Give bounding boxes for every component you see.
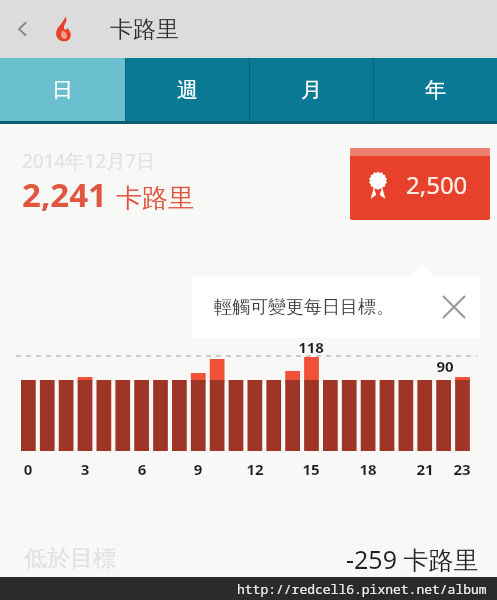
staticText: 2,241	[22, 172, 107, 217]
button[interactable]: 2,500	[350, 148, 490, 220]
button[interactable]: 週	[125, 58, 249, 121]
staticText: 2,500	[406, 168, 468, 201]
staticText: 卡路里	[110, 15, 179, 44]
staticText: 12	[243, 459, 267, 479]
staticText: 118	[295, 337, 327, 357]
staticText: -259 卡路里	[346, 542, 479, 576]
staticText: 日	[52, 77, 73, 103]
staticText: 週	[177, 77, 198, 103]
staticText: 輕觸可變更每日目標。	[214, 296, 394, 319]
staticText: 15	[299, 459, 323, 479]
button[interactable]: Back	[0, 0, 46, 58]
staticText: 卡路里	[116, 182, 194, 215]
staticText: 3	[73, 459, 97, 479]
staticText: 低於目標	[24, 544, 116, 573]
staticText: 0	[16, 459, 40, 479]
staticText: 23	[450, 459, 474, 479]
staticText: 2014年12月7日	[22, 148, 156, 174]
staticText: 6	[130, 459, 154, 479]
button[interactable]: 年	[373, 58, 497, 121]
staticText: 21	[413, 459, 437, 479]
staticText: 月	[301, 77, 322, 103]
button[interactable]: 月	[249, 58, 373, 121]
button[interactable]: Close	[432, 285, 476, 329]
staticText: 年	[425, 77, 446, 103]
button[interactable]: 日	[0, 58, 125, 121]
staticText: http://redcell6.pixnet.net/album	[237, 580, 487, 598]
staticText: 9	[186, 459, 210, 479]
staticText: 90	[431, 356, 459, 376]
staticText: 18	[356, 459, 380, 479]
